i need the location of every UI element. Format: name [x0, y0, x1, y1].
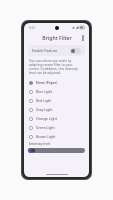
staticText: Blue Light: [36, 89, 53, 94]
staticText: Intensity level: [29, 142, 51, 146]
button[interactable]: Orange Light: [24, 114, 89, 123]
staticText: 9:41: [29, 26, 36, 30]
button[interactable]: Intensity level slider: [28, 147, 85, 154]
button[interactable]: More options: [78, 33, 87, 42]
staticText: Orange Light: [36, 116, 57, 121]
staticText: Enable Feature: [32, 48, 70, 53]
button[interactable]: Gray Light: [24, 105, 89, 114]
button[interactable]: Brown Light: [24, 132, 89, 141]
button[interactable]: Green Light: [24, 123, 89, 132]
staticText: Brown Light: [36, 134, 56, 139]
button[interactable]: Red Light: [24, 96, 89, 105]
staticText: Gray Light: [36, 107, 53, 112]
staticText: Green Light: [36, 125, 55, 130]
staticText: None (Paper): [36, 80, 58, 85]
button[interactable]: Enable Feature: [28, 45, 85, 56]
staticText: Red Light: [36, 98, 52, 103]
button[interactable]: Enable Feature toggle: [70, 48, 81, 54]
button[interactable]: None (Paper): [24, 78, 89, 87]
staticText: You can reduce eye strain by adapting sc…: [29, 59, 84, 75]
button[interactable]: Blue Light: [24, 87, 89, 96]
staticText: Bright Filter: [42, 34, 72, 41]
